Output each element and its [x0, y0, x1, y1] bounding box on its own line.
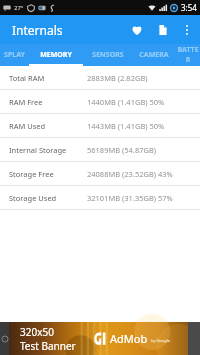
staticText: MEMORY [40, 50, 72, 60]
staticText: SENSORS [92, 50, 124, 60]
button[interactable]: Storage Used [0, 186, 200, 209]
staticText: BATTER [176, 45, 200, 65]
button[interactable]: Total RAM [0, 66, 200, 89]
staticText: by Google [151, 338, 170, 343]
staticText: Total RAM [9, 73, 87, 83]
button[interactable]: MEMORY [28, 44, 84, 66]
staticText: 32101MB (31.35GB) 57% [87, 193, 173, 203]
button[interactable]: Favorite [124, 17, 150, 43]
button[interactable]: BATTER [176, 44, 200, 66]
staticText: 320x50 [20, 325, 54, 339]
staticText: CAMERA [139, 50, 169, 60]
staticText: 2883MB (2.82GB) [87, 73, 148, 83]
button[interactable]: SPLAY [0, 44, 28, 66]
staticText: 27° [14, 4, 24, 12]
staticText: RAM Free [9, 97, 87, 107]
staticText: 1440MB (1.41GB) 50% [87, 97, 165, 107]
staticText: Storage Free [9, 169, 87, 179]
button[interactable]: SENSORS [84, 44, 132, 66]
staticText: RAM Used [9, 121, 87, 131]
staticText: 1443MB (1.41GB) 50% [87, 121, 165, 131]
button[interactable]: Internal Storage [0, 138, 200, 161]
button[interactable]: Report [150, 17, 176, 43]
button[interactable]: More options [176, 19, 198, 41]
staticText: Internal Storage [9, 145, 87, 155]
staticText: 56189MB (54.87GB) [87, 145, 157, 155]
button[interactable]: RAM Free [0, 90, 200, 113]
staticText: SPLAY [4, 50, 25, 60]
staticText: Test Banner [20, 339, 76, 353]
staticText: Storage Used [9, 193, 87, 203]
staticText: Internals [12, 22, 63, 38]
button[interactable]: Storage Free [0, 162, 200, 185]
button[interactable]: Advertisement [0, 322, 200, 355]
staticText: 3:54 [181, 2, 197, 13]
button[interactable]: RAM Used [0, 114, 200, 137]
button[interactable]: CAMERA [132, 44, 176, 66]
staticText: 24088MB (23.52GB) 43% [87, 169, 173, 179]
staticText: AdMob [110, 331, 148, 346]
